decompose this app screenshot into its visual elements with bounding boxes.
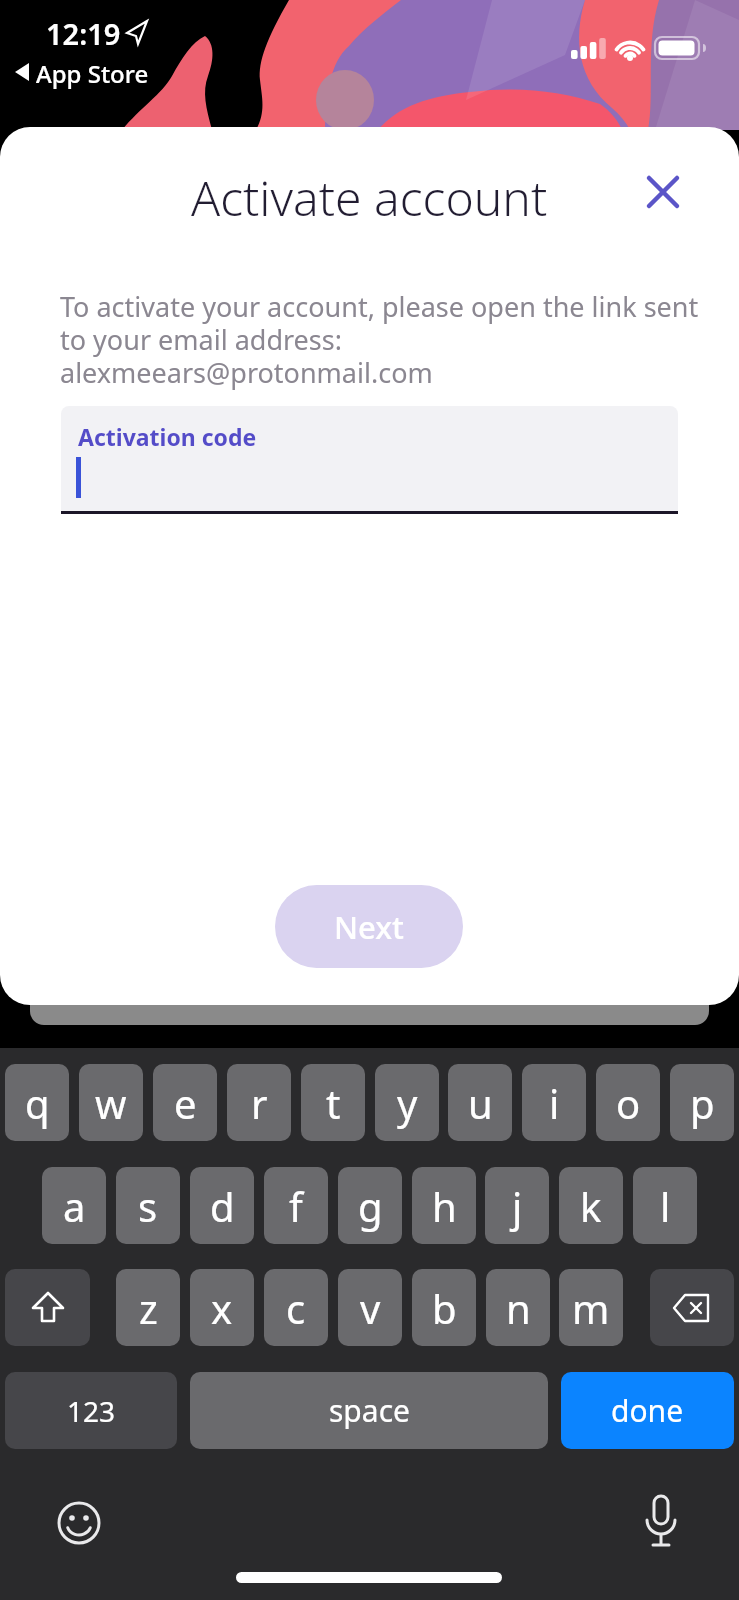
staticText: h [432, 1179, 457, 1233]
button[interactable]: r [227, 1064, 291, 1141]
staticText: w [95, 1076, 127, 1130]
staticText: z [139, 1281, 158, 1335]
button[interactable]: space [190, 1372, 548, 1449]
button[interactable]: l [633, 1167, 697, 1244]
staticText: a [63, 1179, 86, 1233]
button[interactable]: App Store [36, 57, 149, 90]
staticText: space [329, 1390, 410, 1431]
staticText: p [690, 1076, 715, 1130]
button[interactable] [5, 1269, 90, 1346]
staticText: b [432, 1281, 457, 1335]
staticText: i [549, 1076, 560, 1130]
staticText: m [572, 1281, 610, 1335]
staticText: 123 [67, 1392, 116, 1430]
button[interactable]: b [412, 1269, 476, 1346]
button[interactable]: p [670, 1064, 734, 1141]
button[interactable]: h [412, 1167, 476, 1244]
staticText: g [358, 1179, 383, 1233]
button[interactable]: q [5, 1064, 69, 1141]
button[interactable]: d [190, 1167, 254, 1244]
button[interactable]: g [338, 1167, 402, 1244]
staticText: t [326, 1076, 341, 1130]
button[interactable]: Next [275, 885, 463, 968]
staticText: v [360, 1281, 381, 1335]
staticText: To activate your account, please open th… [60, 288, 699, 391]
button[interactable]: x [190, 1269, 254, 1346]
staticText: Activation code [78, 421, 257, 452]
staticText: d [210, 1179, 235, 1233]
button[interactable]: u [448, 1064, 512, 1141]
button[interactable]: w [79, 1064, 143, 1141]
staticText: 12:19 [46, 14, 121, 53]
staticText: q [25, 1076, 50, 1130]
button[interactable]: e [153, 1064, 217, 1141]
button[interactable]: a [42, 1167, 106, 1244]
button[interactable]: v [338, 1269, 402, 1346]
button[interactable]: y [375, 1064, 439, 1141]
button[interactable]: Activation code [61, 406, 678, 514]
button[interactable]: f [264, 1167, 328, 1244]
button[interactable]: z [116, 1269, 180, 1346]
staticText: u [468, 1076, 493, 1130]
button[interactable] [56, 1500, 102, 1546]
button[interactable]: o [596, 1064, 660, 1141]
staticText: j [512, 1179, 523, 1233]
button[interactable] [639, 168, 687, 216]
button[interactable]: k [559, 1167, 623, 1244]
button[interactable]: i [522, 1064, 586, 1141]
button[interactable]: done [561, 1372, 734, 1449]
staticText: f [289, 1179, 303, 1233]
staticText: Next [334, 906, 404, 948]
staticText: n [506, 1281, 531, 1335]
button[interactable]: t [301, 1064, 365, 1141]
button[interactable]: 123 [5, 1372, 177, 1449]
button[interactable]: n [486, 1269, 550, 1346]
staticText: o [616, 1076, 641, 1130]
staticText: l [660, 1179, 671, 1233]
staticText: e [174, 1076, 197, 1130]
button[interactable] [650, 1269, 734, 1346]
button[interactable]: j [485, 1167, 549, 1244]
staticText: k [580, 1179, 602, 1233]
button[interactable]: s [116, 1167, 180, 1244]
staticText: Activate account [191, 165, 548, 230]
staticText: done [611, 1390, 684, 1431]
button[interactable] [638, 1492, 684, 1554]
staticText: s [138, 1179, 158, 1233]
staticText: c [286, 1281, 306, 1335]
button[interactable]: m [559, 1269, 623, 1346]
button[interactable]: c [264, 1269, 328, 1346]
staticText: r [251, 1076, 268, 1130]
staticText: y [397, 1076, 418, 1130]
staticText: x [211, 1281, 233, 1335]
